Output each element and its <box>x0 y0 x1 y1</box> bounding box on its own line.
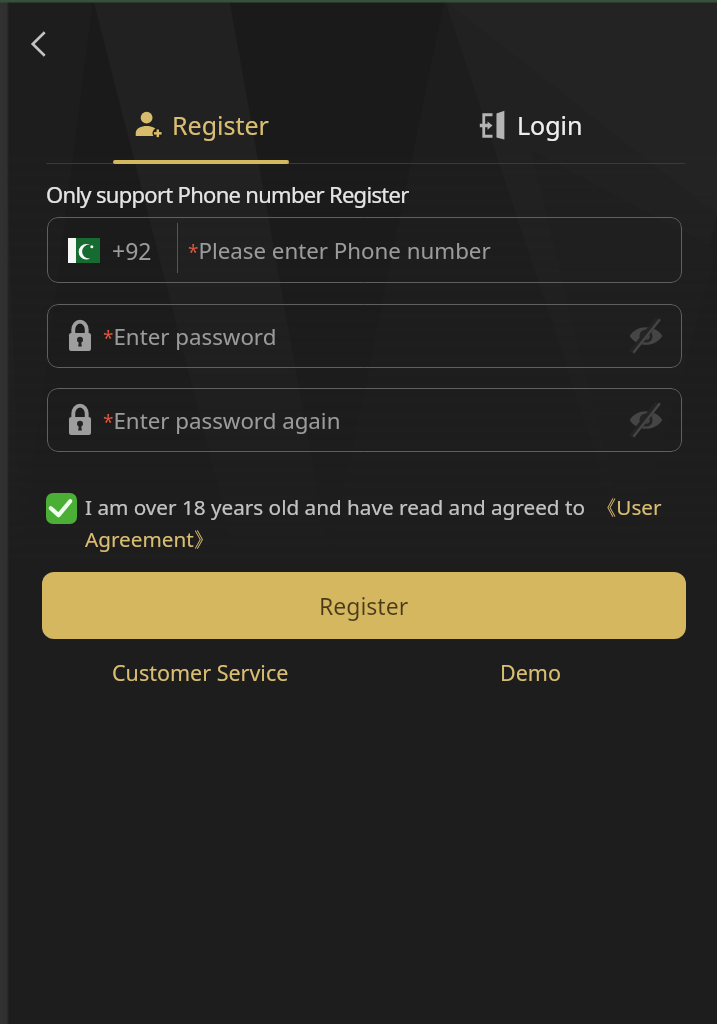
button[interactable]: Customer Service <box>94 650 307 695</box>
button[interactable]: Back <box>15 20 63 68</box>
button[interactable]: Demo <box>482 650 579 695</box>
staticText: *Enter password <box>103 321 277 351</box>
staticText: Demo <box>500 658 561 687</box>
staticText: Only support Phone number Register <box>46 179 409 209</box>
button[interactable]: Show password <box>622 312 670 360</box>
button[interactable]: +92 <box>47 217 682 283</box>
staticText: Register <box>319 590 409 621</box>
staticText: Login <box>517 108 583 142</box>
staticText: *Please enter Phone number <box>188 235 491 265</box>
button[interactable]: Register <box>46 90 356 165</box>
button[interactable]: *Enter password again <box>47 388 682 452</box>
staticText: Customer Service <box>112 658 289 687</box>
staticText: *Enter password again <box>103 405 341 435</box>
button[interactable]: Agree to user agreement <box>46 493 77 524</box>
button[interactable]: Login <box>380 90 685 162</box>
staticText: +92 <box>112 235 152 266</box>
button[interactable]: *Enter password <box>47 304 682 368</box>
button[interactable]: Register <box>42 572 686 639</box>
staticText: Register <box>172 108 269 142</box>
button[interactable]: Show password <box>622 396 670 444</box>
staticText: I am over 18 years old and have read and… <box>85 493 683 553</box>
